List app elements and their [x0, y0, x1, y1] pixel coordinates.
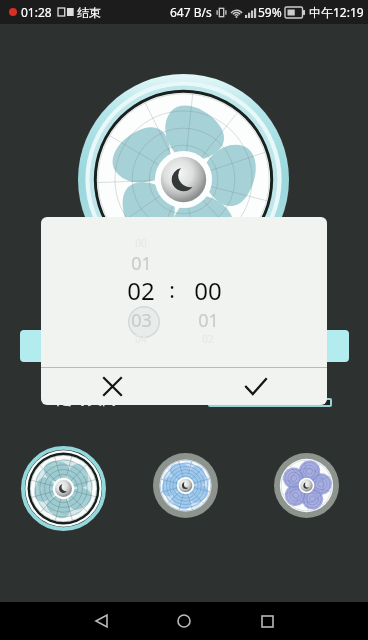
staticText: 结束	[77, 5, 101, 20]
staticText: 02	[127, 274, 155, 307]
staticText: 04	[135, 332, 147, 346]
button[interactable]: Confirm	[184, 368, 327, 405]
button[interactable]: Fan mode 2	[153, 453, 218, 518]
button[interactable]: Fan mode 1	[21, 446, 106, 531]
button[interactable]: Recents	[246, 602, 288, 640]
staticText: 01:28	[21, 4, 52, 20]
button[interactable]: Back	[80, 602, 122, 640]
button[interactable]: Home	[163, 602, 205, 640]
button[interactable]: Cancel	[41, 368, 184, 405]
staticText: 59%	[258, 4, 282, 20]
button[interactable]: Fan	[78, 74, 289, 285]
staticText: 03	[131, 308, 152, 333]
button[interactable]: Fan mode 3	[274, 453, 339, 518]
staticText: :	[169, 276, 175, 305]
staticText: 00	[135, 236, 147, 250]
staticText: 647 B/s	[170, 4, 212, 20]
staticText: 02	[202, 332, 214, 346]
staticText: 01	[198, 308, 219, 333]
staticText: 定时关闭	[57, 390, 117, 409]
staticText: 中午12:19	[309, 4, 364, 20]
staticText: 01	[131, 251, 152, 276]
staticText: 00	[194, 274, 222, 307]
